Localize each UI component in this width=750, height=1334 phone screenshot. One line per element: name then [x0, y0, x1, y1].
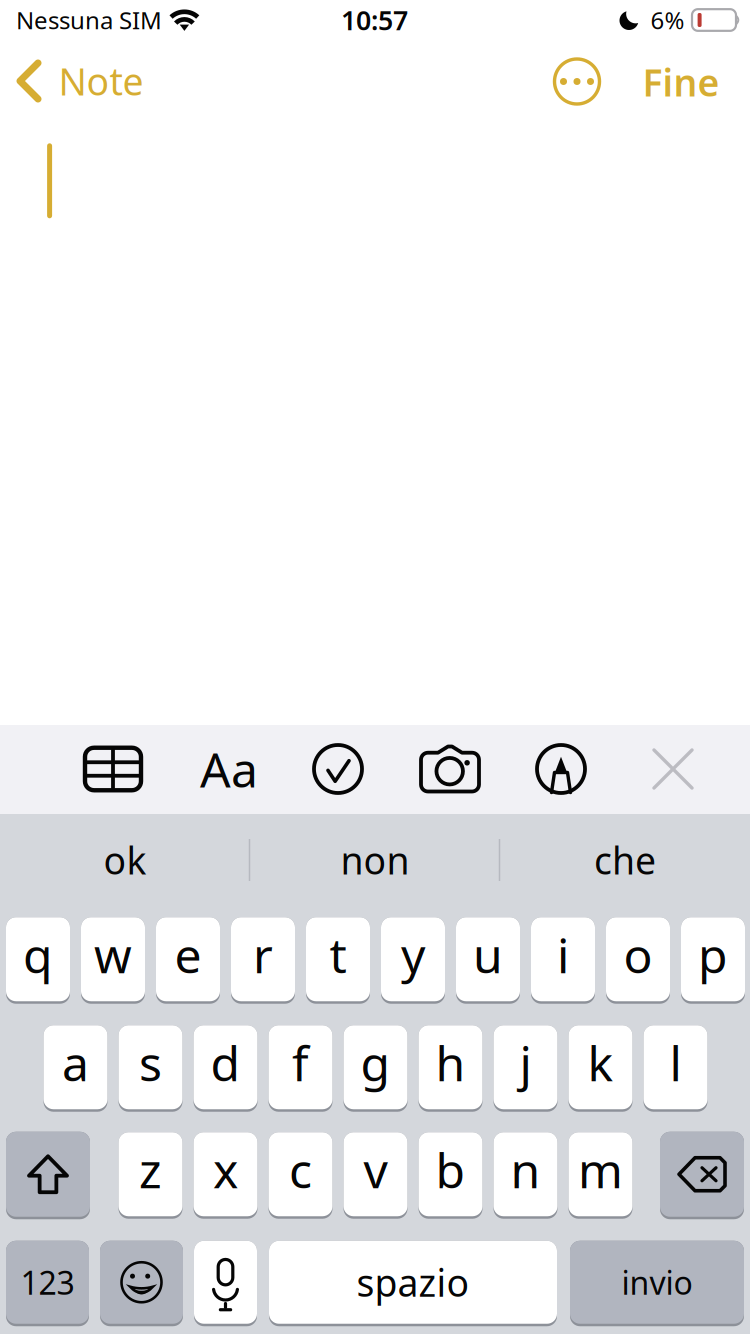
button[interactable]: j	[493, 1025, 557, 1112]
button[interactable]: c	[268, 1132, 332, 1219]
staticText: 10:57	[341, 2, 408, 38]
button[interactable]: Checklist	[295, 724, 381, 813]
button[interactable]: invio	[570, 1241, 744, 1326]
button[interactable]: non	[251, 814, 499, 906]
staticText: w	[94, 923, 132, 987]
staticText: Nessuna SIM	[16, 4, 162, 36]
staticText: q	[23, 923, 53, 987]
button[interactable]: d	[193, 1025, 257, 1112]
button[interactable]: f	[268, 1025, 332, 1112]
staticText: Aa	[200, 737, 258, 801]
button[interactable]: spazio	[269, 1241, 557, 1326]
staticText: Note	[58, 56, 143, 106]
staticText: i	[557, 923, 569, 987]
staticText: m	[578, 1138, 623, 1202]
staticText: 123	[20, 1261, 74, 1303]
staticText: spazio	[356, 1257, 469, 1307]
button[interactable]: Note	[16, 46, 158, 116]
staticText: j	[519, 1031, 531, 1095]
button[interactable]: che	[501, 814, 749, 906]
staticText: y	[401, 923, 425, 987]
button[interactable]: r	[231, 917, 295, 1004]
staticText: che	[594, 835, 656, 885]
button[interactable]: Aa	[186, 724, 272, 813]
button[interactable]: v	[343, 1132, 407, 1219]
button[interactable]: s	[118, 1025, 182, 1112]
button[interactable]: o	[606, 917, 670, 1004]
button[interactable]: m	[568, 1132, 632, 1219]
staticText: e	[174, 923, 201, 987]
button[interactable]: k	[568, 1025, 632, 1112]
button[interactable]: l	[643, 1025, 707, 1112]
button[interactable]: Dictation	[194, 1241, 257, 1326]
button[interactable]: Fine	[626, 47, 736, 117]
button[interactable]: Shift	[6, 1132, 90, 1219]
staticText: d	[210, 1031, 240, 1095]
staticText: o	[623, 923, 652, 987]
button[interactable]: x	[193, 1132, 257, 1219]
staticText: u	[473, 923, 503, 987]
button[interactable]: i	[531, 917, 595, 1004]
button[interactable]: z	[118, 1132, 182, 1219]
button[interactable]: q	[6, 917, 70, 1004]
button[interactable]: Table	[70, 724, 156, 813]
staticText: l	[669, 1031, 681, 1095]
staticText: f	[292, 1031, 309, 1095]
button[interactable]: Emoji	[100, 1241, 183, 1326]
staticText: z	[139, 1138, 162, 1202]
button[interactable]: e	[156, 917, 220, 1004]
staticText: b	[435, 1138, 465, 1202]
button[interactable]: t	[306, 917, 370, 1004]
button[interactable]: ok	[1, 814, 249, 906]
button[interactable]: y	[381, 917, 445, 1004]
button[interactable]: Markup	[518, 724, 604, 813]
button[interactable]: 123	[6, 1241, 89, 1326]
button[interactable]: Hide keyboard	[630, 724, 716, 813]
staticText: non	[340, 835, 409, 885]
staticText: invio	[621, 1261, 692, 1303]
staticText: h	[435, 1031, 465, 1095]
staticText: g	[360, 1031, 390, 1095]
staticText: c	[289, 1138, 312, 1202]
staticText: v	[363, 1138, 387, 1202]
button[interactable]: u	[456, 917, 520, 1004]
button[interactable]: p	[681, 917, 745, 1004]
button[interactable]: g	[343, 1025, 407, 1112]
staticText: x	[213, 1138, 238, 1202]
staticText: n	[510, 1138, 540, 1202]
staticText: ok	[103, 835, 146, 885]
staticText: k	[587, 1031, 613, 1095]
button[interactable]: More	[542, 46, 612, 116]
button[interactable]: w	[81, 917, 145, 1004]
button[interactable]: a	[43, 1025, 107, 1112]
button[interactable]: n	[493, 1132, 557, 1219]
button[interactable]: b	[418, 1132, 482, 1219]
button[interactable]: Backspace	[660, 1132, 744, 1219]
staticText: 6%	[650, 4, 684, 36]
staticText: a	[62, 1031, 89, 1095]
staticText: Fine	[642, 57, 719, 107]
button[interactable]: Camera	[407, 724, 493, 813]
staticText: r	[253, 923, 273, 987]
staticText: s	[139, 1031, 162, 1095]
button[interactable]: h	[418, 1025, 482, 1112]
staticText: p	[698, 923, 728, 987]
staticText: t	[329, 923, 346, 987]
